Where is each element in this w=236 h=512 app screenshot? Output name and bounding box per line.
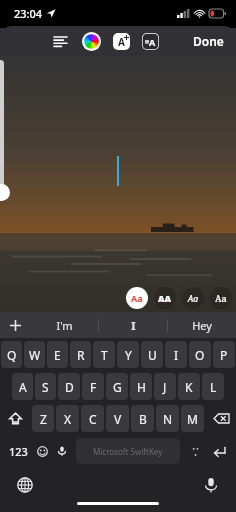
button[interactable]: B — [131, 405, 154, 432]
button[interactable]: Text background — [142, 33, 159, 50]
staticText: A — [149, 36, 156, 48]
button[interactable]: Enter — [206, 438, 232, 464]
button[interactable]: O — [189, 341, 211, 368]
button[interactable]: Colour — [82, 32, 101, 51]
staticText: T — [101, 347, 108, 363]
button[interactable]: L — [202, 373, 224, 400]
button[interactable]: 123 — [4, 438, 32, 464]
staticText: S — [42, 379, 49, 395]
button[interactable]: X — [56, 405, 79, 432]
staticText: Aa — [188, 292, 199, 304]
staticText: M — [187, 411, 198, 427]
staticText: N — [163, 411, 173, 427]
staticText: J — [163, 379, 167, 395]
button[interactable]: Hey — [168, 312, 236, 338]
staticText: R — [77, 347, 85, 363]
button[interactable]: Aa — [210, 287, 232, 309]
button[interactable]: R — [70, 341, 91, 368]
button[interactable]: Text effects — [113, 33, 130, 50]
staticText: Aa — [215, 292, 227, 304]
staticText: P — [220, 347, 228, 363]
button[interactable]: Voice typing — [200, 474, 222, 496]
button[interactable] — [0, 184, 10, 201]
staticText: Aa — [131, 292, 143, 304]
button[interactable]: Alignment — [50, 31, 70, 51]
staticText: B — [139, 411, 147, 427]
staticText: 123 — [9, 444, 28, 459]
button[interactable]: G — [106, 373, 128, 400]
button[interactable]: S — [35, 373, 56, 400]
button[interactable]: P — [213, 341, 235, 368]
button[interactable]: F — [82, 373, 104, 400]
staticText: H — [137, 379, 146, 395]
button[interactable]: W — [24, 341, 45, 368]
button[interactable]: U — [141, 341, 163, 368]
staticText: I — [174, 347, 179, 363]
button[interactable]: J — [154, 373, 176, 400]
button[interactable]: I — [165, 341, 187, 368]
staticText: AA — [158, 292, 172, 304]
button[interactable]: AA — [154, 287, 176, 309]
staticText: A — [19, 379, 27, 395]
button[interactable]: M — [181, 405, 204, 432]
staticText: F — [90, 379, 97, 395]
button[interactable]: Add — [0, 312, 30, 338]
button[interactable]: E — [47, 341, 68, 368]
button[interactable]: C — [81, 405, 104, 432]
staticText: Q — [7, 347, 17, 363]
button[interactable]: D — [58, 373, 80, 400]
button[interactable]: Emoji — [32, 438, 52, 464]
staticText: D — [65, 379, 74, 395]
staticText: Microsoft SwiftKey — [93, 446, 163, 457]
staticText: L — [210, 379, 217, 395]
button[interactable]: H — [130, 373, 152, 400]
staticText: C — [89, 411, 97, 427]
button[interactable]: Voice input — [52, 438, 72, 464]
staticText: K — [185, 379, 193, 395]
staticText: I — [131, 318, 136, 333]
button[interactable]: Done — [189, 29, 228, 53]
button[interactable]: Y — [117, 341, 139, 368]
button[interactable]: K — [178, 373, 200, 400]
button[interactable]: Change language — [14, 474, 36, 496]
button[interactable]: Shift — [0, 405, 30, 432]
button[interactable]: Z — [32, 405, 54, 432]
staticText: W — [29, 347, 41, 363]
button[interactable]: Aa — [126, 287, 148, 309]
button[interactable]: V — [106, 405, 129, 432]
button[interactable]: Text size slider — [0, 60, 4, 192]
staticText: V — [114, 411, 122, 427]
button[interactable]: Q — [1, 341, 22, 368]
staticText: Y — [125, 347, 132, 363]
staticText: X — [64, 411, 72, 427]
staticText: A — [118, 35, 125, 49]
staticText: Z — [40, 411, 47, 427]
staticText: E — [54, 347, 61, 363]
staticText: U — [148, 347, 157, 363]
button[interactable]: Backspace — [206, 405, 236, 432]
staticText: Hey — [192, 318, 212, 333]
staticText: I'm — [56, 318, 73, 333]
button[interactable]: I — [99, 312, 167, 338]
button[interactable]: I'm — [30, 312, 98, 338]
button[interactable]: N — [156, 405, 179, 432]
button[interactable]: T — [93, 341, 115, 368]
button[interactable]: Aa — [182, 287, 204, 309]
staticText: Done — [193, 33, 224, 49]
staticText: G — [113, 379, 122, 395]
staticText: O — [195, 347, 205, 363]
button[interactable]: Microsoft SwiftKey — [76, 438, 180, 464]
button[interactable]: A — [12, 373, 33, 400]
button[interactable]: Punctuation — [184, 438, 206, 464]
staticText: 23:04 — [14, 6, 43, 21]
